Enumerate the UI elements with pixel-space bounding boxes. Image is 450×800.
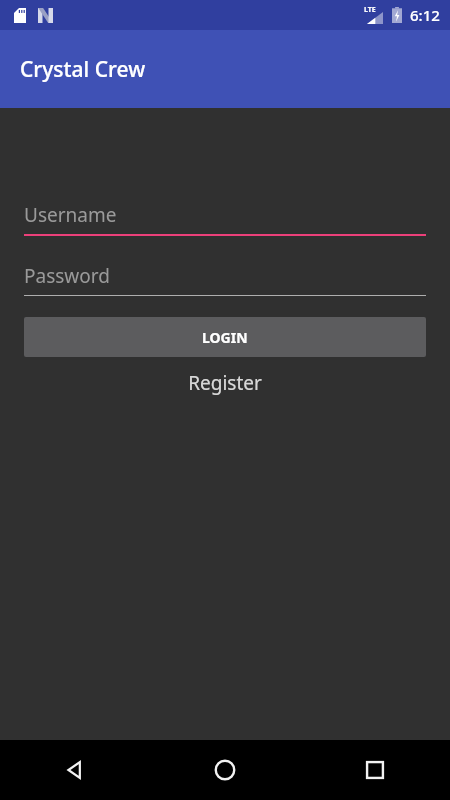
staticText: LOGIN [202,328,248,347]
button[interactable]: Home [150,740,300,800]
button[interactable]: Back [0,740,150,800]
staticText: LTE [364,5,376,15]
button[interactable]: Username [24,202,426,236]
button[interactable]: LOGIN [24,317,426,357]
button[interactable]: Register [0,370,450,396]
staticText: Password [24,263,110,289]
staticText: Username [24,202,117,228]
staticText: 6:12 [410,5,440,25]
staticText: Crystal Crew [20,55,146,84]
button[interactable]: Recent apps [300,740,450,800]
button[interactable]: Password [24,263,426,296]
staticText: Register [188,370,262,396]
